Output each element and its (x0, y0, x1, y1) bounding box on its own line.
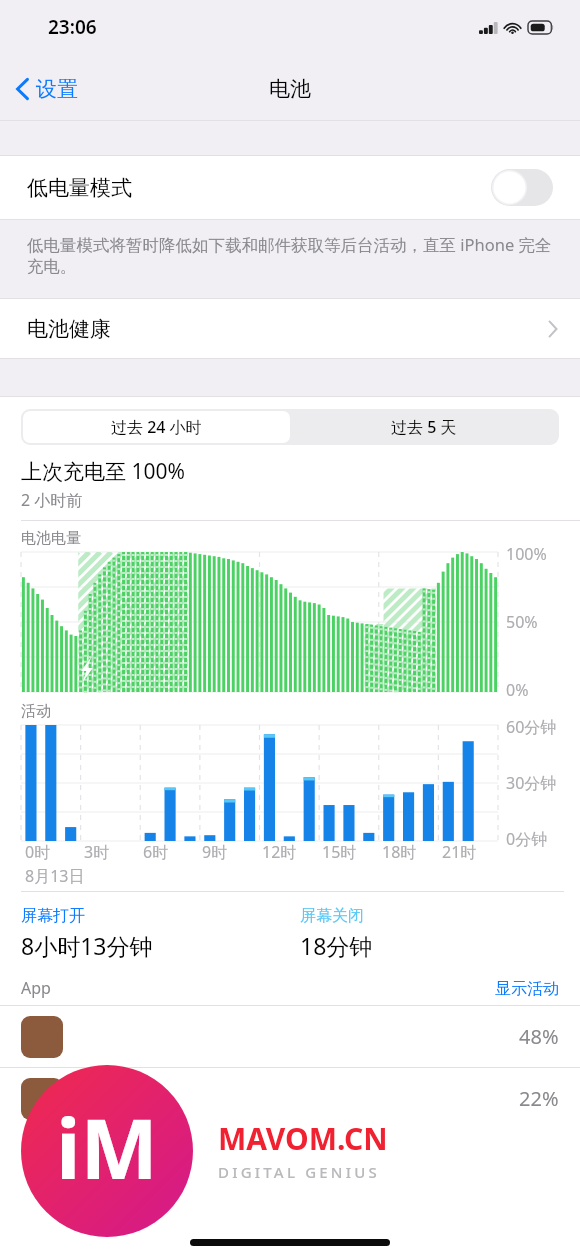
staticText: 48% (519, 1023, 559, 1050)
staticText: 过去 5 天 (391, 416, 457, 438)
staticText: 低电量模式将暂时降低如下载和邮件获取等后台活动，直至 iPhone 完全充电。 (27, 233, 564, 277)
staticText: 电池 (269, 76, 311, 102)
staticText: 23:06 (48, 14, 97, 40)
staticText: DIGITAL GENIUS (218, 1162, 380, 1182)
button[interactable]: 过去 24 小时 (23, 411, 290, 443)
staticText: 0分钟 (506, 828, 548, 850)
staticText: 8小时13分钟 (21, 930, 153, 961)
button[interactable]: 低电量模式 (0, 156, 580, 219)
staticText: 过去 24 小时 (111, 416, 202, 438)
staticText: 活动 (21, 702, 51, 721)
staticText: 8月13日 (25, 865, 85, 887)
staticText: 18时 (382, 841, 417, 863)
staticText: 60分钟 (506, 716, 557, 738)
staticText: 0时 (25, 841, 51, 863)
staticText: 18分钟 (300, 930, 373, 961)
button[interactable]: 电池健康 (0, 299, 580, 358)
staticText: 显示活动 (495, 979, 559, 999)
staticText: 50% (506, 611, 538, 633)
button[interactable]: 22% (0, 1068, 580, 1129)
staticText: 电池健康 (27, 316, 111, 342)
staticText: 30分钟 (506, 772, 557, 794)
staticText: App (21, 977, 51, 999)
staticText: 电池电量 (21, 529, 81, 548)
staticText: 9时 (202, 841, 228, 863)
button[interactable]: 低电量模式开关 (491, 169, 553, 206)
staticText: 低电量模式 (27, 175, 132, 201)
staticText: 12时 (262, 841, 297, 863)
staticText: 0% (506, 679, 529, 701)
staticText: 6时 (143, 841, 169, 863)
staticText: iM (56, 1091, 158, 1203)
button[interactable]: 过去 5 天 (290, 411, 557, 443)
button[interactable]: 设置 (0, 70, 90, 108)
button[interactable]: 显示活动 (495, 979, 559, 999)
staticText: 屏幕打开 (21, 906, 85, 926)
staticText: 上次充电至 100% (21, 457, 185, 486)
button[interactable]: 48% (0, 1006, 580, 1067)
staticText: 22% (519, 1085, 559, 1112)
staticText: 屏幕关闭 (300, 906, 364, 926)
staticText: 2 小时前 (21, 489, 83, 511)
staticText: 100% (506, 543, 547, 565)
staticText: 21时 (442, 841, 477, 863)
staticText: 设置 (36, 76, 78, 102)
staticText: 3时 (84, 841, 110, 863)
staticText: MAVOM.CN (218, 1118, 388, 1159)
staticText: 15时 (322, 841, 357, 863)
